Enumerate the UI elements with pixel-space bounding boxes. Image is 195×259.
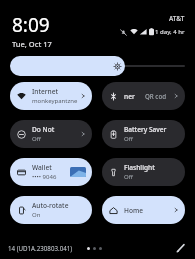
staticText: QR cod [145,92,167,100]
staticText: On [32,211,41,219]
staticText: Wallet [32,163,52,172]
staticText: AT&T [169,14,185,23]
button[interactable]: ner [102,82,185,110]
staticText: •••• 9046 [32,173,57,181]
button[interactable]: Wallet [10,158,92,186]
staticText: 14 (UD1A.230803.041) [8,244,73,252]
button[interactable]: Battery Saver [102,120,185,148]
staticText: Internet [32,87,59,96]
button[interactable]: Flashlight [102,158,185,186]
staticText: Home [124,206,143,215]
staticText: 8:09 [12,12,50,38]
staticText: 1 day, 4 hr [155,28,185,36]
staticText: Off [32,135,41,143]
staticText: Tue, Oct 17 [12,39,52,49]
staticText: Flashlight [124,163,155,172]
staticText: Auto-rotate [32,201,69,210]
staticText: Battery Saver [124,125,167,134]
button[interactable]: Edit tiles [175,242,187,254]
staticText: Off [124,173,133,181]
staticText: Off [124,135,133,143]
staticText: Do Not Disturb [32,125,78,134]
button[interactable]: Do Not Disturb [10,120,92,148]
staticText: ner [124,92,135,101]
button[interactable]: Auto-rotate [10,196,92,224]
button[interactable]: Brightness [10,56,185,76]
button[interactable]: Internet [10,82,92,110]
button[interactable]: Home [102,196,185,224]
staticText: monkeypantznet [32,97,78,105]
